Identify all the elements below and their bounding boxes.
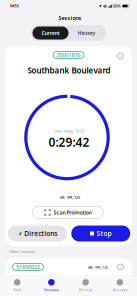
staticText: i (120, 53, 121, 59)
staticText: Sessions (44, 287, 59, 292)
staticText: Permits (79, 287, 93, 292)
staticText: 51650022 (16, 263, 40, 271)
button[interactable]: Permits (68, 275, 103, 296)
button[interactable]: Other session info (117, 264, 123, 270)
staticText: i (120, 264, 121, 270)
staticText: 83% (113, 3, 120, 9)
staticText: Park (13, 287, 21, 292)
button[interactable]: Session info (117, 53, 123, 59)
staticText: 14:53 (9, 3, 18, 8)
staticText: XXC12S (67, 194, 80, 200)
button[interactable]: Scan Promotion (32, 206, 103, 218)
staticText: Account (113, 287, 127, 292)
staticText: Current (41, 29, 59, 37)
button[interactable]: Park (0, 275, 34, 296)
staticText: Scan Promotion (53, 209, 91, 216)
staticText: Directions (24, 229, 57, 238)
button[interactable]: Sessions (34, 275, 68, 296)
staticText: History (77, 29, 95, 37)
button[interactable]: Current (32, 26, 68, 39)
staticText: Other sessions (9, 249, 35, 254)
button[interactable]: Stop (71, 225, 130, 241)
staticText: Ends Today, 15:23 (54, 128, 84, 134)
button[interactable]: History (68, 26, 104, 39)
button[interactable]: Account (103, 275, 137, 296)
staticText: XXC12S (95, 264, 108, 270)
button[interactable]: Directions (8, 225, 67, 241)
staticText: Stop (96, 229, 111, 238)
staticText: Southbank Boulevard (27, 65, 110, 76)
staticText: 35001876 (56, 51, 80, 59)
staticText: Sessions (58, 14, 81, 22)
staticText: 0:29:42 (48, 134, 89, 150)
